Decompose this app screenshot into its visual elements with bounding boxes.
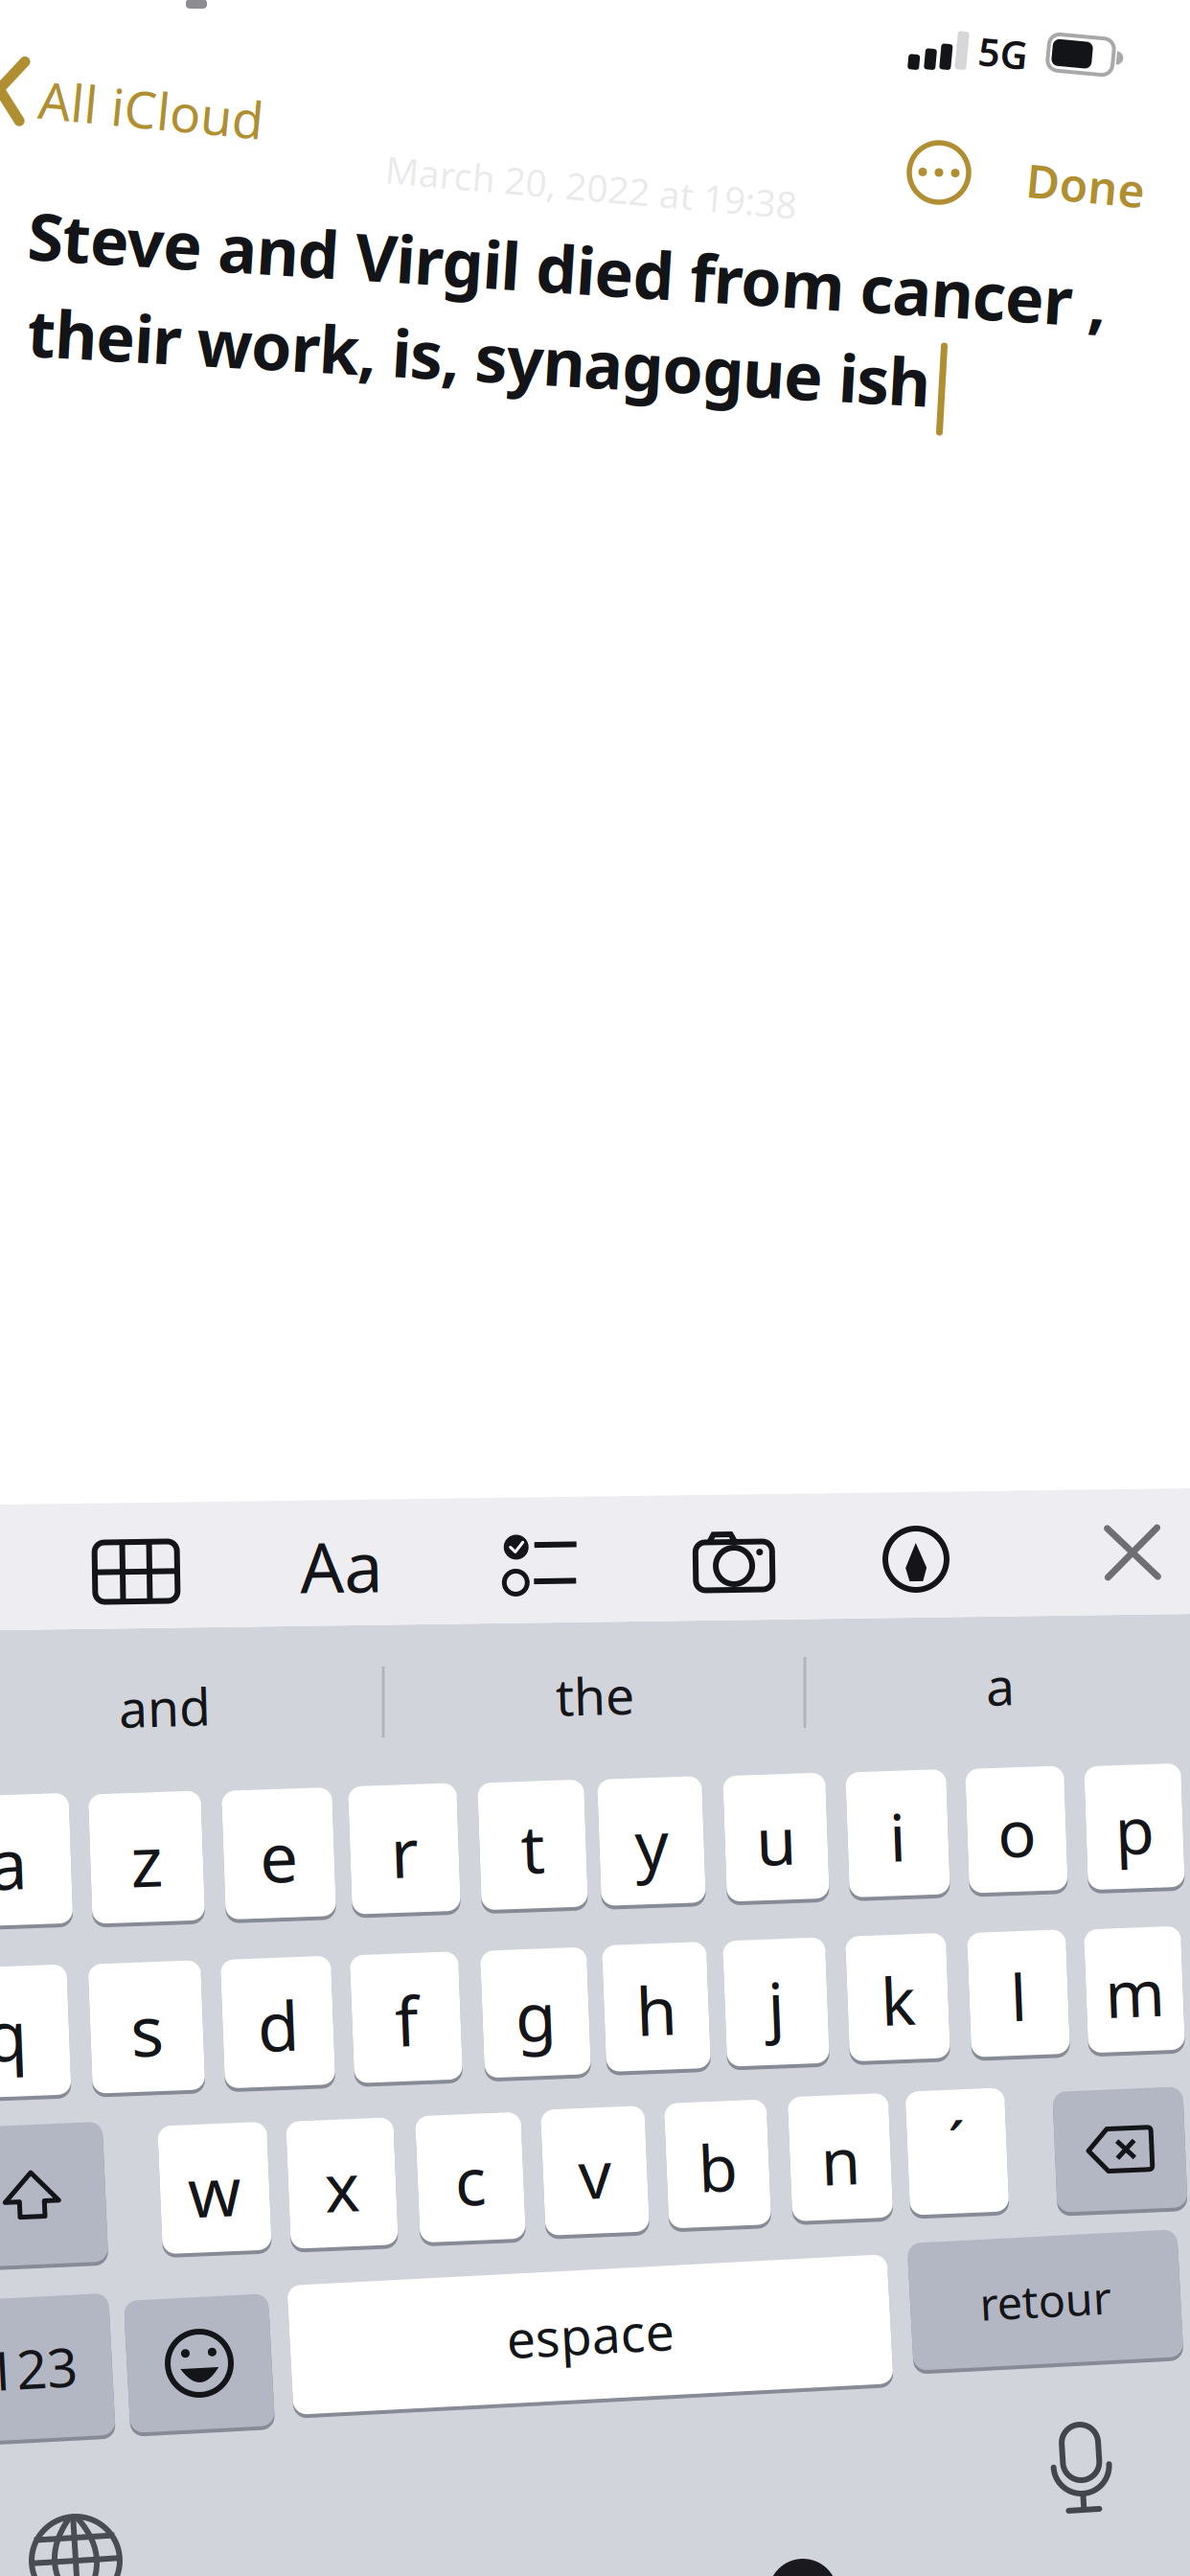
button[interactable]: w (160, 2124, 269, 2252)
button[interactable]: h (604, 1943, 709, 2070)
button[interactable]: ´ (908, 2090, 1007, 2213)
staticText: ´ (949, 2102, 966, 2185)
button[interactable]: g (482, 1949, 589, 2076)
staticText: q (0, 1989, 27, 2080)
button[interactable]: the (556, 1661, 634, 1729)
button[interactable]: j (725, 1939, 827, 2065)
button[interactable]: a (0, 1795, 71, 1925)
staticText: m (1105, 1950, 1164, 2035)
button[interactable]: x (288, 2119, 396, 2247)
staticText: j (767, 1962, 785, 2048)
staticText: v (578, 2130, 612, 2217)
button[interactable]: Text formatting (300, 1520, 382, 1612)
button[interactable]: 123 (0, 2297, 112, 2439)
staticText: a (0, 1817, 27, 1909)
staticText: w (188, 2146, 241, 2236)
staticText: Steve and Virgil died from cancer , (27, 225, 1108, 312)
staticText: retour (980, 2270, 1111, 2330)
button[interactable]: s (90, 1962, 203, 2092)
staticText: Aa (300, 1520, 382, 1612)
button[interactable]: b (666, 2101, 769, 2226)
button[interactable]: Insert photo (694, 1532, 774, 1592)
button[interactable]: n (790, 2095, 891, 2219)
button[interactable]: Checklist (506, 1535, 579, 1593)
button[interactable]: Done (1026, 154, 1145, 215)
staticText: r (390, 1807, 418, 1896)
staticText: z (130, 1814, 163, 1906)
button[interactable]: l (969, 1931, 1068, 2055)
staticText: their work, is, synagogue ish (27, 313, 931, 400)
button[interactable]: o (967, 1767, 1066, 1892)
staticText: l (1010, 1954, 1027, 2039)
staticText: 5G (978, 27, 1028, 78)
staticText: e (260, 1811, 298, 1901)
button[interactable]: and (119, 1673, 211, 1741)
button[interactable]: Shift (0, 2125, 105, 2265)
button[interactable]: e (224, 1789, 334, 1918)
staticText: y (635, 1800, 668, 1888)
button[interactable]: Dictate (1054, 2432, 1110, 2513)
button[interactable]: t (480, 1781, 586, 1908)
staticText: o (997, 1790, 1036, 1875)
staticText: u (756, 1797, 796, 1883)
button[interactable]: p (1086, 1765, 1183, 1888)
button[interactable]: r (350, 1785, 459, 1913)
button[interactable]: v (543, 2108, 647, 2233)
staticText: f (395, 1975, 418, 2065)
staticText: espace (506, 2301, 674, 2368)
staticText: c (455, 2137, 486, 2223)
staticText: All iCloud (38, 73, 264, 141)
staticText: Done (1026, 154, 1145, 215)
button[interactable]: m (1086, 1928, 1183, 2051)
button[interactable]: retour (910, 2236, 1180, 2364)
button[interactable]: Emoji (127, 2297, 272, 2429)
staticText: i (889, 1793, 906, 1879)
staticText: k (881, 1957, 915, 2043)
staticText: a (986, 1652, 1015, 1720)
staticText: b (698, 2124, 737, 2209)
button[interactable]: Next keyboard (32, 2517, 120, 2576)
staticText: d (257, 1980, 298, 2070)
staticText: g (515, 1971, 556, 2060)
button[interactable]: More options (909, 143, 969, 202)
button[interactable]: a (986, 1652, 1015, 1720)
button[interactable]: c (418, 2114, 523, 2241)
button[interactable]: Insert table (95, 1542, 177, 1601)
button[interactable]: z (90, 1793, 203, 1922)
button[interactable]: k (847, 1935, 948, 2060)
button[interactable]: u (725, 1774, 827, 1900)
button[interactable]: Dismiss keyboard (1108, 1528, 1157, 1577)
staticText: h (636, 1966, 677, 2054)
button[interactable]: Back to All iCloud (0, 73, 264, 141)
staticText: p (1115, 1787, 1154, 1872)
staticText: the (556, 1661, 634, 1729)
staticText: x (324, 2142, 360, 2230)
button[interactable]: Markup (885, 1529, 947, 1590)
button[interactable]: i (847, 1771, 948, 1896)
staticText: n (821, 2118, 860, 2202)
button[interactable]: espace (290, 2270, 891, 2399)
staticText: 123 (0, 2332, 78, 2404)
staticText: and (119, 1673, 211, 1741)
button[interactable]: f (352, 1953, 460, 2081)
button[interactable]: y (599, 1778, 704, 1904)
button[interactable]: Delete (1055, 2089, 1185, 2210)
button[interactable]: d (223, 1958, 333, 2086)
staticText: s (130, 1984, 163, 2076)
button[interactable]: q (0, 1966, 69, 2097)
staticText: t (521, 1804, 545, 1892)
staticText: March 20, 2022 at 19:38 (385, 162, 798, 211)
